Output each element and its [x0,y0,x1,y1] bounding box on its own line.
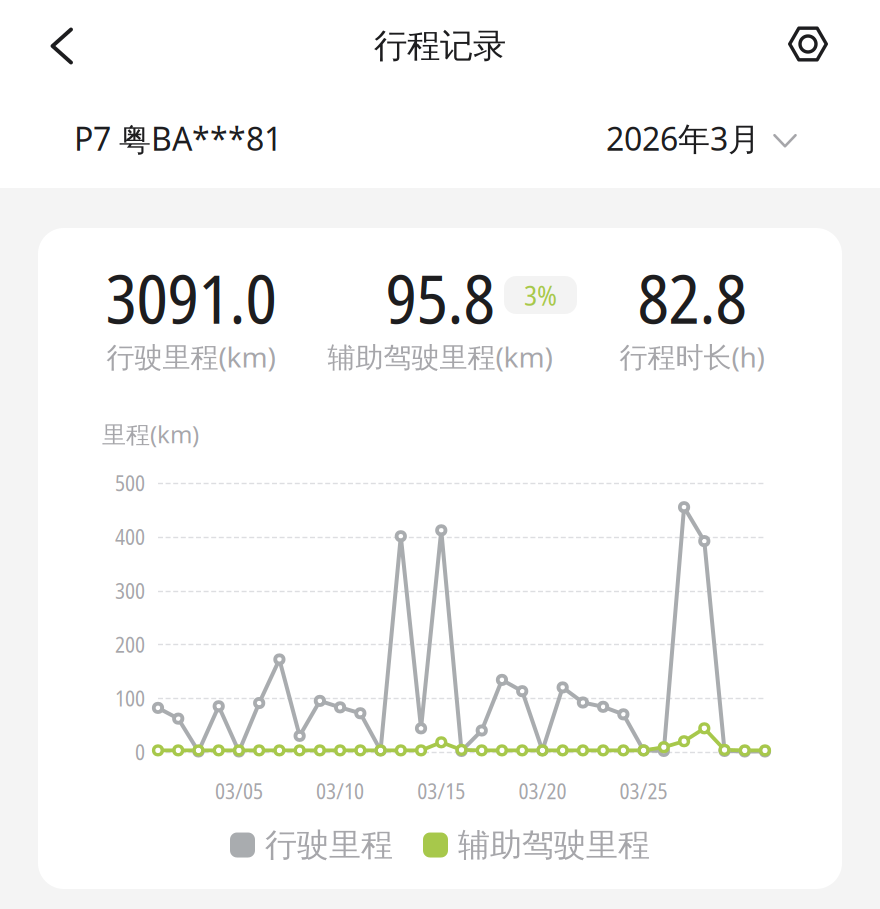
staticText: 100 [115,684,145,713]
staticText: 500 [115,468,145,498]
staticText: P7 粤BA***81 [74,117,282,160]
staticText: 03/20 [518,776,566,806]
button[interactable]: 返回 [32,16,92,76]
staticText: 2026年3月 [606,117,760,159]
staticText: 行程时长(h) [619,338,764,375]
staticText: 3% [524,276,557,314]
staticText: 400 [115,522,145,551]
staticText: 3091.0 [105,253,276,343]
staticText: 82.8 [637,253,746,343]
staticText: 行程记录 [374,25,506,66]
button[interactable]: 设置 [778,14,838,74]
staticText: 行驶里程 [265,825,393,865]
staticText: 03/10 [316,776,364,806]
staticText: 95.8 [385,253,494,343]
staticText: 辅助驾驶里程(km) [327,338,552,375]
button[interactable]: 2026年3月 [606,117,797,159]
staticText: 行驶里程(km) [106,338,275,375]
staticText: 03/05 [215,776,263,806]
staticText: 0 [135,737,145,767]
staticText: 03/25 [620,776,668,806]
staticText: 里程(km) [102,418,199,450]
staticText: 200 [115,630,145,659]
staticText: 辅助驾驶里程 [458,825,650,865]
staticText: 300 [115,576,145,605]
staticText: 03/15 [417,776,465,806]
